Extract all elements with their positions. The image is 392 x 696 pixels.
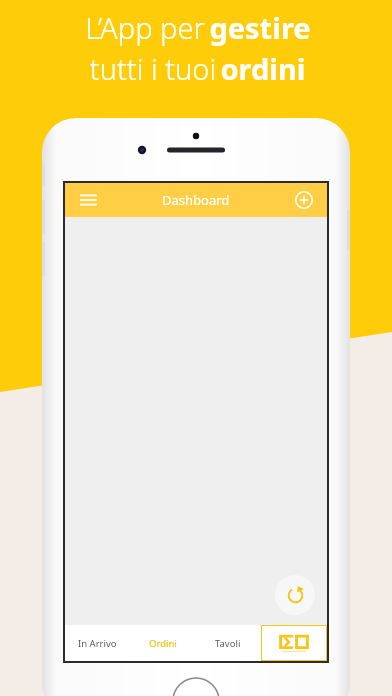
button[interactable]: Add: [291, 187, 317, 213]
staticText: tutti i tuoi: [86, 49, 220, 88]
button[interactable]: In Arrivo: [65, 625, 130, 661]
button[interactable]: Menu: [75, 187, 101, 213]
staticText: gestire: [209, 8, 311, 47]
staticText: Tavoli: [215, 637, 241, 650]
staticText: L’App per: [81, 8, 209, 47]
staticText: In Arrivo: [78, 637, 117, 650]
button[interactable]: Tavoli: [195, 625, 261, 661]
staticText: Ordini: [149, 637, 177, 650]
button[interactable]: MO: [262, 626, 326, 660]
staticText: ordini: [220, 49, 306, 88]
button[interactable]: Ordini: [130, 625, 195, 661]
button[interactable]: Refresh: [275, 575, 315, 615]
staticText: Dashboard: [162, 191, 230, 209]
